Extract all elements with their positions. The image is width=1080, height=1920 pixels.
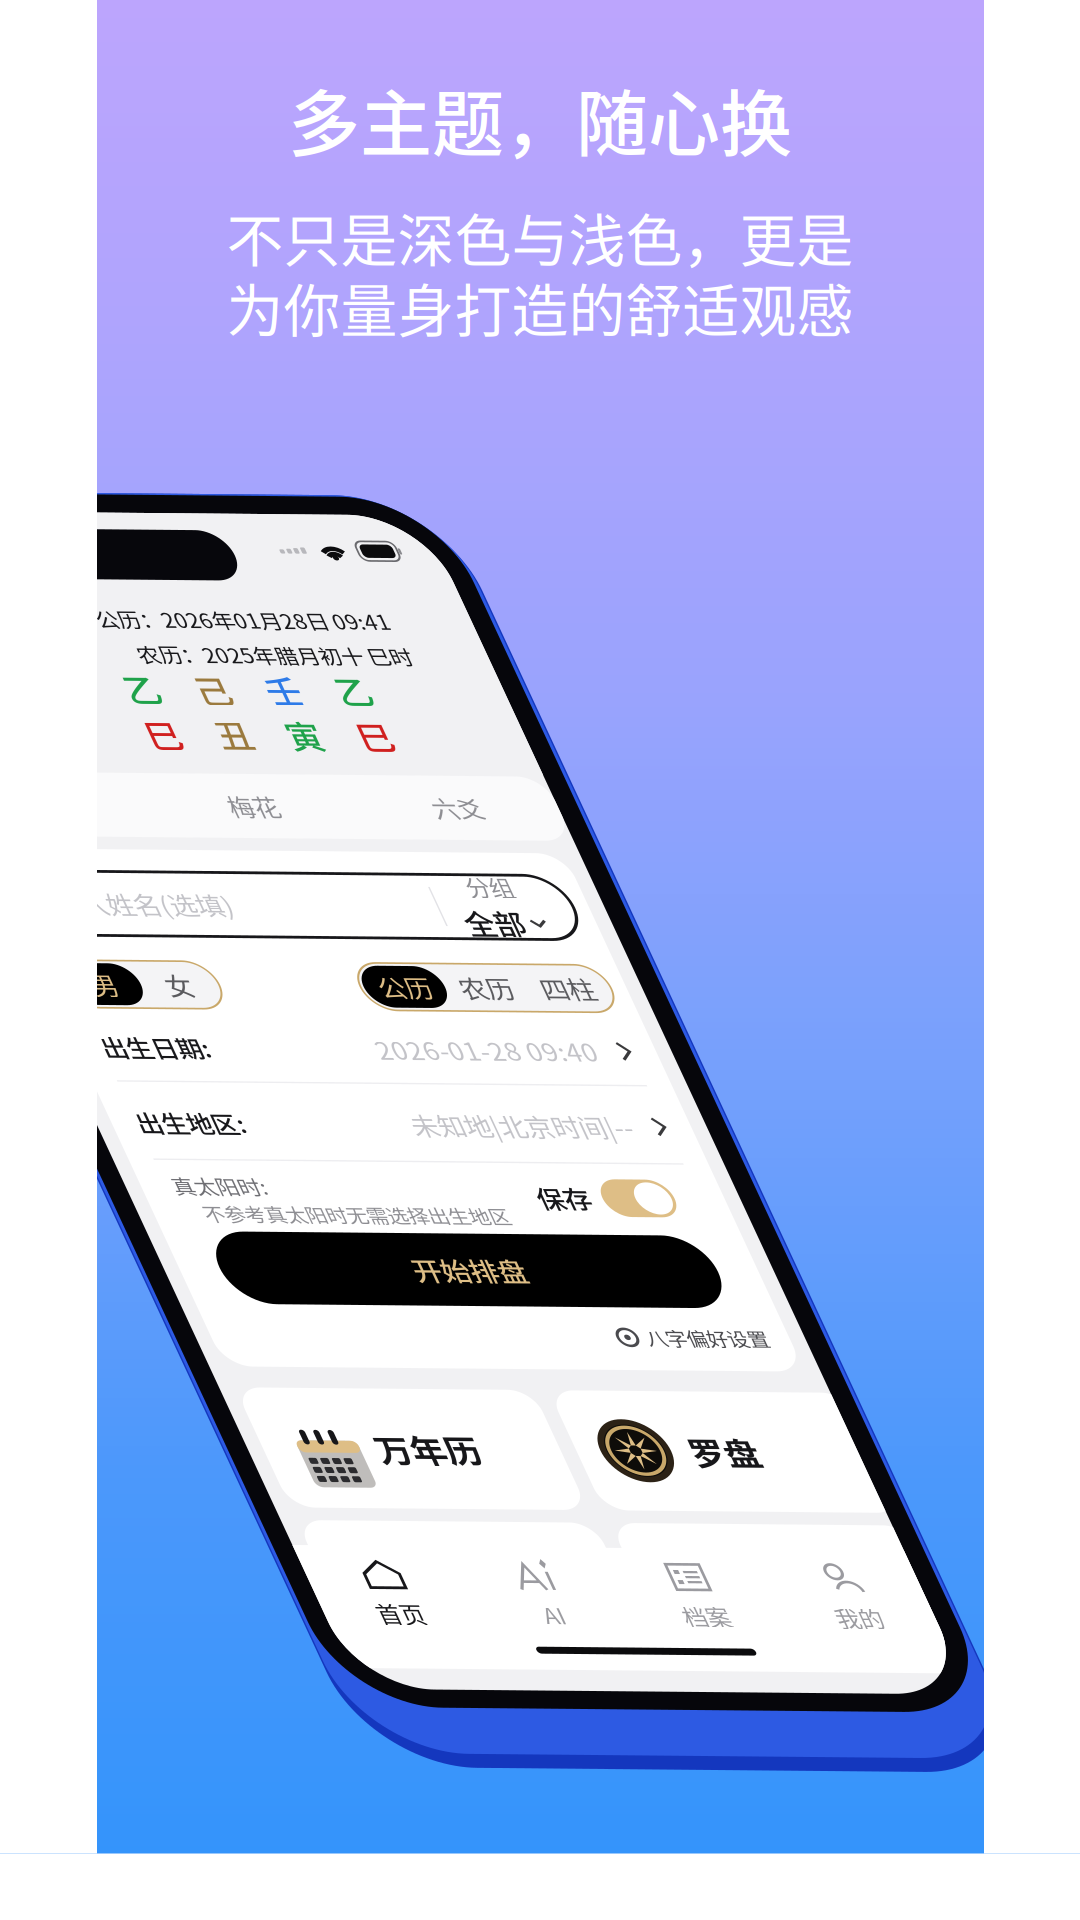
staticText: 全部 (295, 212, 333, 240)
button[interactable]: 我的 (292, 683, 390, 734)
staticText: 农历 (273, 260, 307, 285)
button[interactable]: 出生地区: (10, 347, 380, 395)
staticText: 公历 (221, 260, 255, 285)
button[interactable]: 出生日期: (10, 293, 380, 341)
button[interactable]: 八字 (0, 120, 130, 166)
staticText: 起名 (282, 683, 326, 716)
staticText: 罗盘 (282, 588, 326, 621)
button[interactable]: AI (97, 683, 195, 734)
staticText: 不参考真太阳时无需选择出生地区 (42, 427, 237, 446)
button[interactable]: 四柱 (316, 257, 368, 287)
button[interactable]: 女 (70, 257, 118, 287)
staticText: 为你量身打造的舒适观感 (226, 266, 853, 348)
button[interactable]: 万年历 (10, 561, 200, 647)
staticText: 多主题，随心换 (288, 66, 792, 171)
button[interactable]: 六爻 (260, 120, 390, 166)
staticText: 女 (85, 260, 102, 285)
staticText: 四柱 (325, 260, 359, 285)
button[interactable]: 农历 (264, 257, 316, 287)
staticText: 万年历 (82, 588, 148, 621)
staticText: 巳 (282, 76, 304, 108)
button[interactable]: 黄历 (10, 656, 200, 742)
staticText: 档案 (229, 712, 259, 734)
staticText: 黄历 (82, 683, 126, 716)
staticText: 不只是深色与浅色，更是 (226, 196, 853, 278)
button[interactable]: 罗盘 (210, 561, 400, 647)
button[interactable]: 档案 (195, 683, 292, 734)
button[interactable]: 起名 (210, 656, 400, 742)
staticText: 2026-01-28 09:40 (201, 305, 342, 330)
staticText: AI (140, 712, 153, 734)
staticText: 八字偏好设置 (288, 513, 366, 533)
button[interactable]: 开始排盘 (36, 449, 354, 501)
button[interactable]: 公历 (212, 257, 264, 287)
staticText: 六爻 (309, 132, 341, 155)
button[interactable]: 八字偏好设置 (264, 507, 372, 539)
staticText: 输入姓名(选填) (38, 202, 152, 227)
